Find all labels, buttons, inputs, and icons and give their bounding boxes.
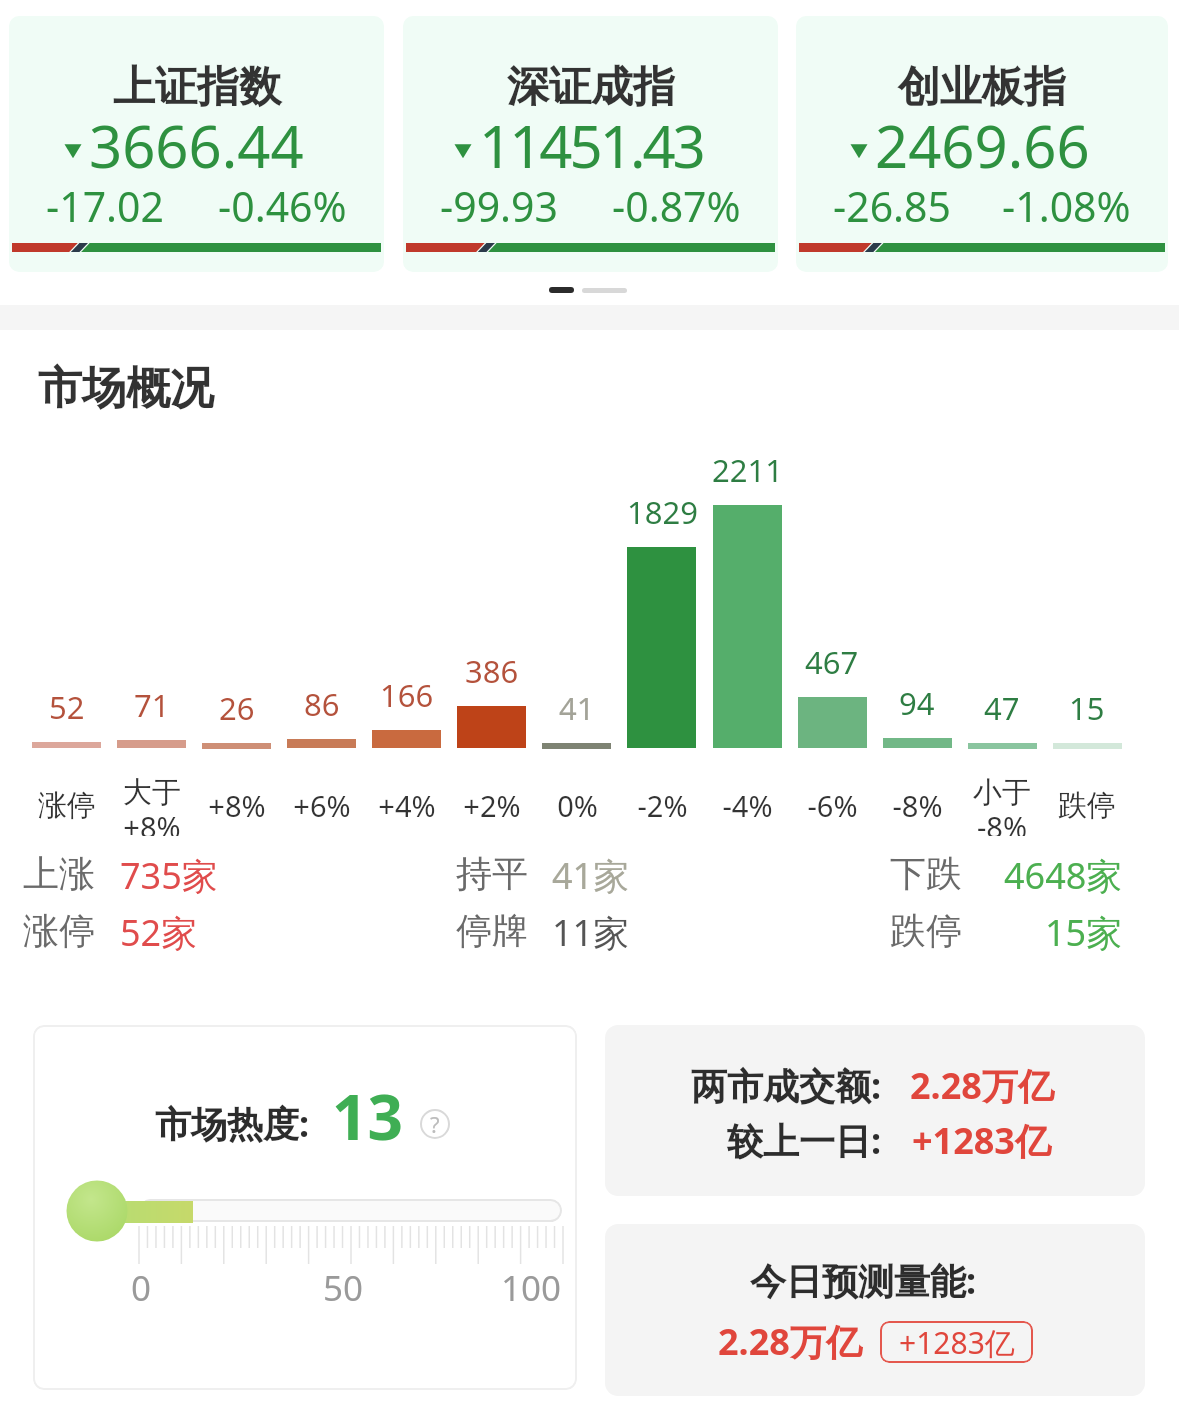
button[interactable]: 上证指数 — [9, 16, 384, 272]
staticText: 跌停 — [890, 908, 962, 953]
staticText: 47 — [984, 687, 1020, 729]
staticText: -8% — [892, 786, 943, 825]
staticText: 11451.43 — [479, 106, 703, 185]
staticText: 13 — [332, 1074, 403, 1158]
staticText: 15家 — [1045, 908, 1123, 957]
staticText: 市场热度: — [155, 1099, 310, 1148]
button[interactable]: 市场热度: — [33, 1025, 577, 1390]
staticText: -1.08% — [1002, 178, 1131, 234]
staticText: ? — [430, 1109, 440, 1139]
staticText: 市场概况 — [38, 361, 214, 416]
staticText: 停牌 — [456, 908, 528, 953]
button[interactable]: 两市成交额: — [605, 1025, 1145, 1196]
staticText: 涨停 — [23, 908, 95, 953]
staticText: 71 — [134, 684, 170, 726]
staticText: 2469.66 — [875, 106, 1090, 185]
staticText: 4648家 — [1004, 851, 1123, 900]
staticText: +6% — [293, 786, 351, 825]
staticText: 41 — [559, 687, 595, 729]
staticText: +1283亿 — [912, 1116, 1051, 1165]
button[interactable]: 创业板指 — [796, 16, 1168, 272]
staticText: 2.28万亿 — [910, 1061, 1054, 1110]
staticText: -26.85 — [833, 178, 951, 234]
staticText: 上证指数 — [113, 61, 281, 114]
staticText: 深证成指 — [507, 61, 675, 114]
staticText: 跌停 — [1058, 787, 1116, 824]
staticText: 两市成交额: — [691, 1061, 882, 1110]
staticText: -17.02 — [46, 178, 164, 234]
button[interactable]: 今日预测量能: — [605, 1224, 1145, 1396]
staticText: 26 — [219, 687, 255, 729]
staticText: -2% — [637, 786, 688, 825]
staticText: -99.93 — [440, 178, 558, 234]
staticText: 467 — [805, 641, 859, 683]
staticText: 上涨 — [23, 851, 95, 896]
staticText: -0.46% — [218, 178, 347, 234]
staticText: 100 — [501, 1264, 562, 1312]
staticText: 52 — [49, 686, 85, 728]
staticText: 0% — [557, 786, 598, 825]
staticText: -4% — [722, 786, 773, 825]
staticText: 94 — [899, 682, 935, 724]
staticText: 今日预测量能: — [750, 1256, 977, 1305]
staticText: 15 — [1069, 687, 1105, 729]
staticText: 较上一日: — [727, 1116, 882, 1165]
staticText: 大于 +8% — [123, 774, 181, 836]
staticText: 41家 — [552, 851, 630, 900]
button[interactable]: 市场热度说明 — [420, 1109, 450, 1139]
staticText: -6% — [807, 786, 858, 825]
staticText: 50 — [323, 1264, 364, 1312]
staticText: -0.87% — [612, 178, 741, 234]
staticText: 2.28万亿 — [718, 1317, 862, 1366]
staticText: 3666.44 — [89, 106, 304, 185]
staticText: 下跌 — [890, 851, 962, 896]
staticText: 386 — [465, 650, 519, 692]
staticText: 735家 — [120, 851, 218, 900]
staticText: 52家 — [120, 908, 198, 957]
button[interactable]: 深证成指 — [403, 16, 778, 272]
staticText: +4% — [378, 786, 436, 825]
staticText: 小于 -8% — [973, 774, 1031, 836]
staticText: +8% — [208, 786, 266, 825]
staticText: 0 — [131, 1264, 152, 1312]
staticText: 86 — [304, 683, 340, 725]
staticText: 涨停 — [38, 787, 96, 824]
staticText: 创业板指 — [898, 61, 1066, 114]
staticText: 1829 — [627, 491, 698, 533]
staticText: 11家 — [552, 908, 630, 957]
staticText: 持平 — [456, 851, 528, 896]
staticText: 2211 — [712, 449, 783, 491]
staticText: +1283亿 — [899, 1322, 1015, 1363]
staticText: 166 — [380, 674, 434, 716]
staticText: +2% — [463, 786, 521, 825]
